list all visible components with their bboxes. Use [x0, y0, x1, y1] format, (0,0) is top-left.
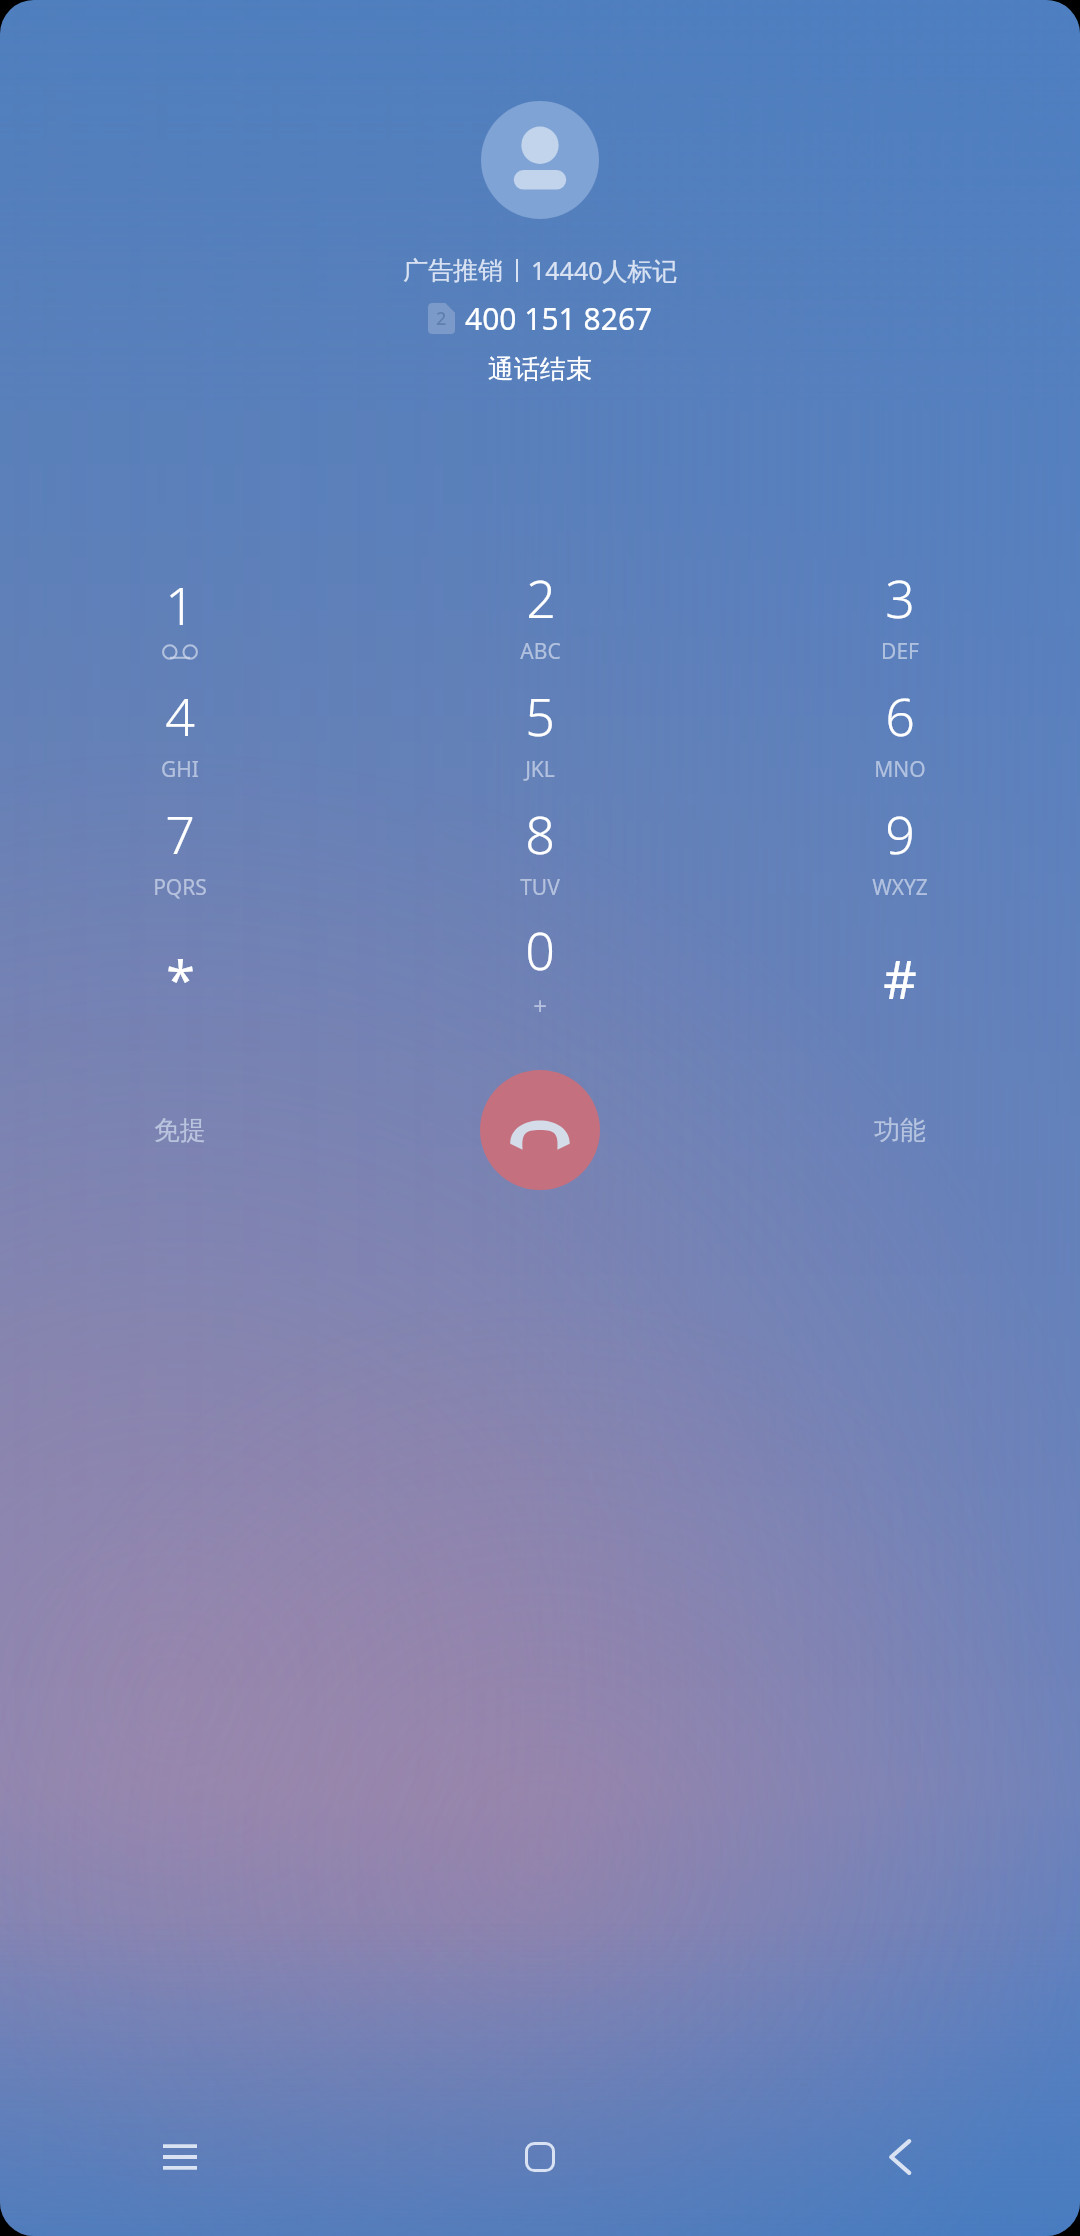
staticText: GHI: [161, 755, 199, 784]
button[interactable]: *: [0, 915, 360, 1033]
staticText: WXYZ: [872, 873, 928, 902]
button[interactable]: Recent apps: [0, 2114, 360, 2200]
staticText: 4: [165, 680, 195, 751]
staticText: 6: [885, 680, 915, 751]
staticText: 9: [885, 798, 915, 869]
staticText: 免提: [154, 1114, 206, 1147]
button[interactable]: End call: [480, 1070, 600, 1190]
staticText: 7: [165, 798, 195, 869]
button[interactable]: #: [720, 915, 1080, 1033]
button[interactable]: Back: [720, 2114, 1080, 2200]
button[interactable]: Home: [360, 2114, 720, 2200]
staticText: 2: [526, 562, 556, 633]
button[interactable]: 3: [720, 561, 1080, 679]
staticText: #: [883, 943, 917, 1014]
staticText: 1: [165, 569, 195, 640]
staticText: PQRS: [153, 873, 207, 902]
staticText: 通话结束: [488, 353, 592, 386]
button[interactable]: Contact avatar: [481, 101, 599, 219]
button[interactable]: 4: [0, 679, 360, 797]
staticText: ABC: [520, 637, 561, 666]
button[interactable]: 功能: [720, 1051, 1080, 1209]
staticText: +: [533, 989, 547, 1022]
button[interactable]: 9: [720, 797, 1080, 915]
staticText: 5: [525, 680, 555, 751]
button[interactable]: 6: [720, 679, 1080, 797]
button[interactable]: 5: [360, 679, 720, 797]
staticText: *: [166, 943, 195, 1014]
staticText: 广告推销: [403, 255, 503, 286]
staticText: JKL: [525, 755, 555, 784]
button[interactable]: 免提: [0, 1051, 360, 1209]
staticText: 400 151 8267: [465, 298, 653, 339]
button[interactable]: 7: [0, 797, 360, 915]
button[interactable]: 2: [360, 561, 720, 679]
button[interactable]: 0: [360, 915, 720, 1033]
button[interactable]: 1: [0, 561, 360, 679]
staticText: 功能: [874, 1114, 926, 1147]
staticText: MNO: [874, 755, 926, 784]
staticText: TUV: [520, 873, 560, 902]
staticText: 3: [885, 562, 915, 633]
staticText: 14440人标记: [531, 253, 678, 287]
staticText: 2: [436, 306, 447, 331]
button[interactable]: 8: [360, 797, 720, 915]
staticText: DEF: [881, 637, 919, 666]
staticText: 8: [525, 798, 555, 869]
staticText: 0: [525, 914, 555, 985]
